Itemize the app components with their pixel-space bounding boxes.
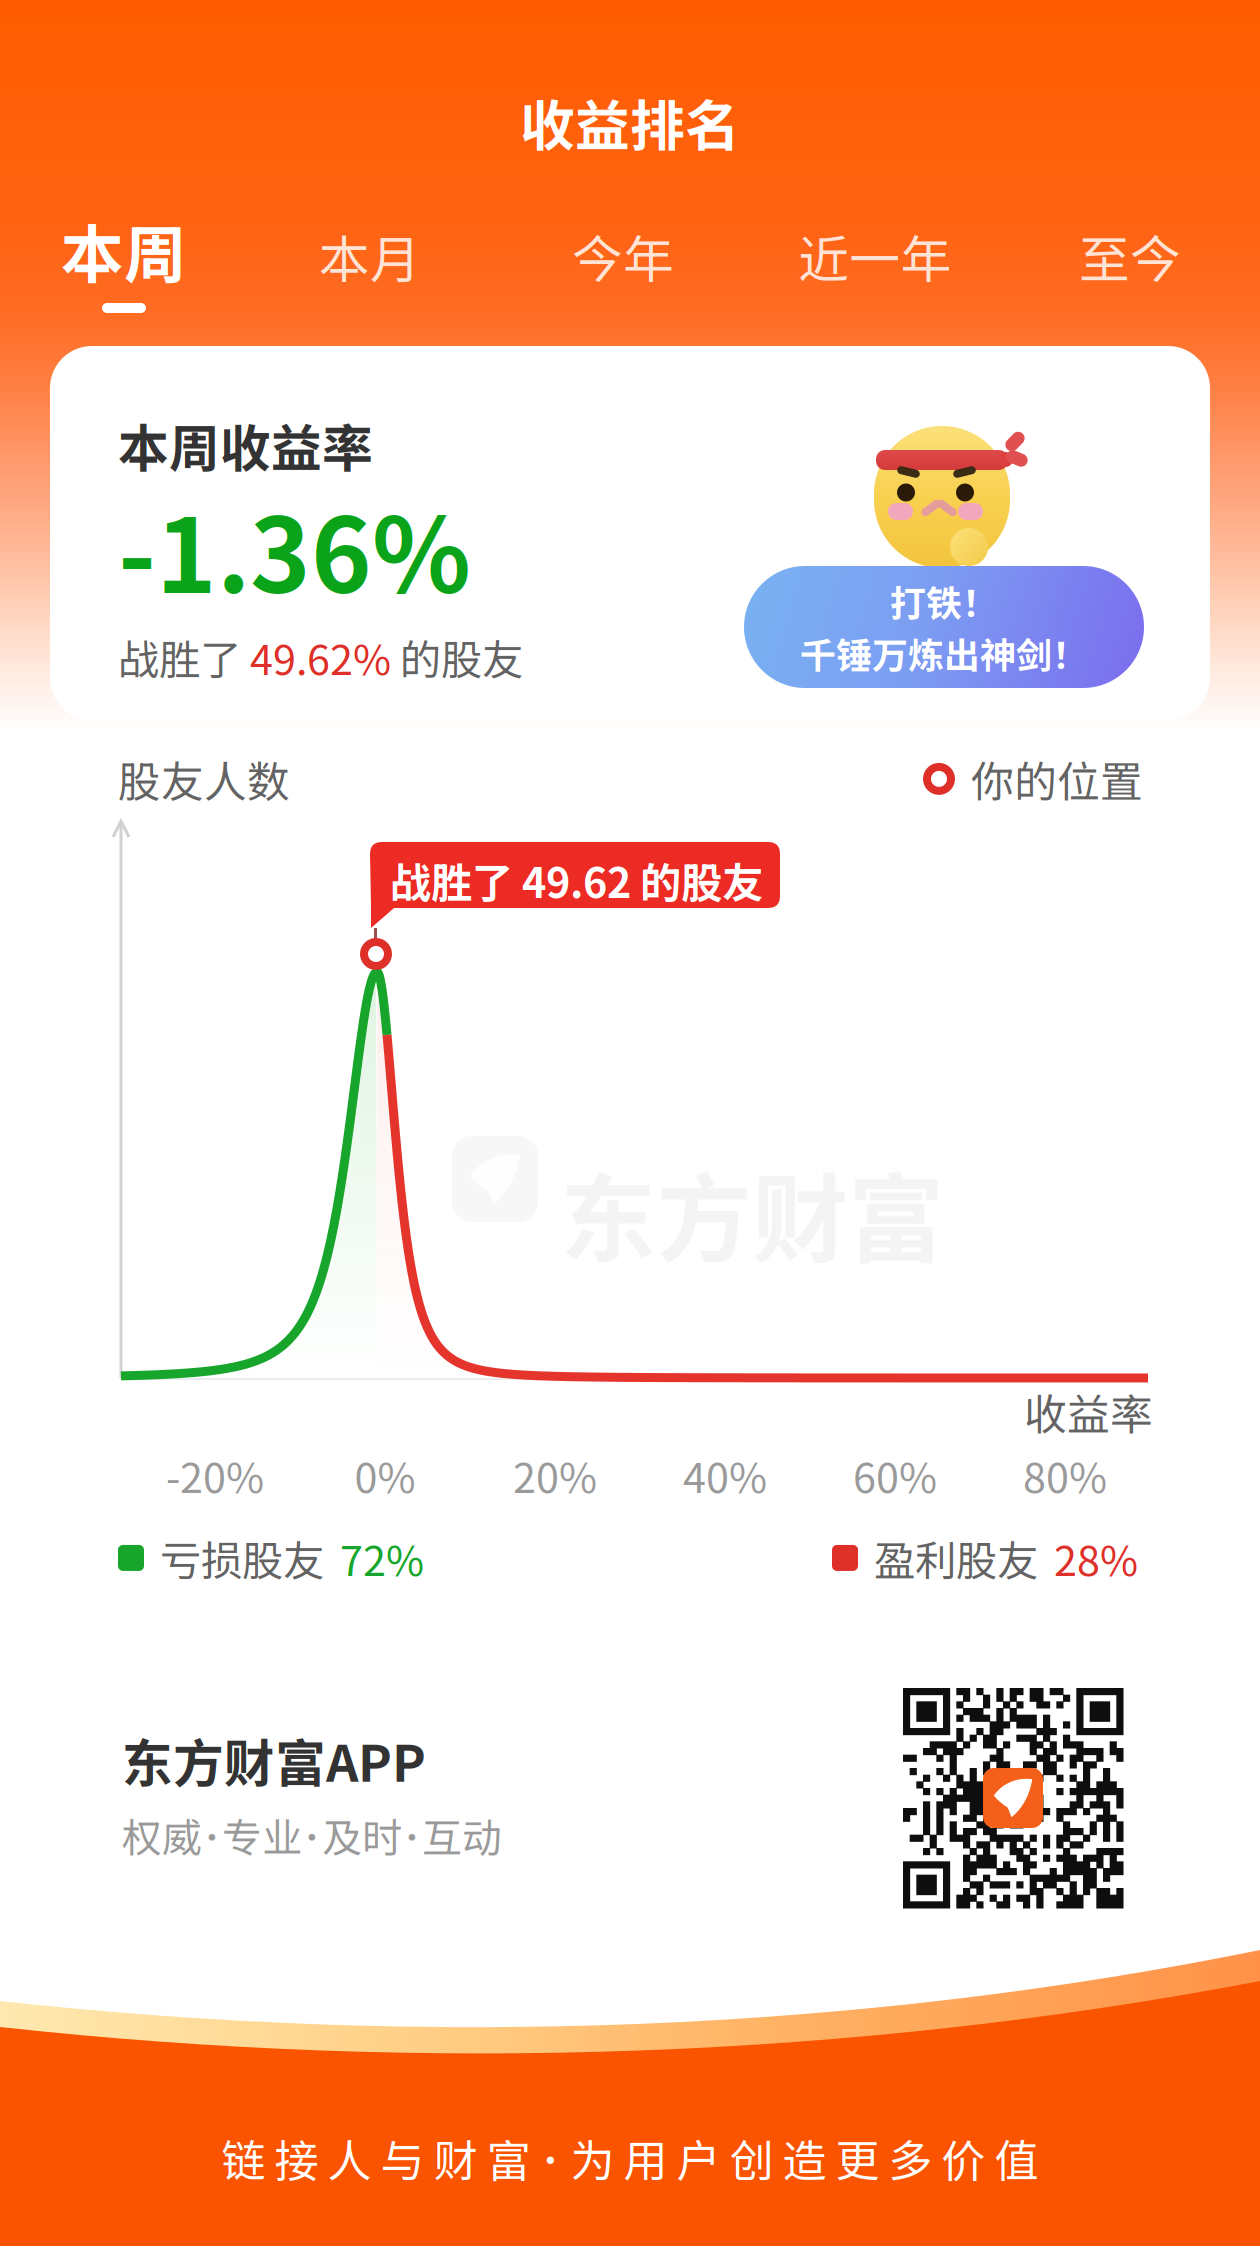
staticText: 战胜了 49.62 的股友 bbox=[390, 850, 763, 910]
staticText: 80% bbox=[1023, 1445, 1107, 1505]
button[interactable]: 本月 bbox=[290, 218, 450, 294]
button[interactable]: 本周 bbox=[44, 212, 204, 324]
staticText: 东方财富APP bbox=[122, 1723, 426, 1796]
staticText: 本月 bbox=[319, 219, 421, 293]
staticText: 72% bbox=[340, 1528, 424, 1588]
staticText: 今年 bbox=[572, 219, 674, 293]
button[interactable]: 今年 bbox=[543, 218, 703, 294]
staticText: 40% bbox=[683, 1445, 767, 1505]
staticText: 盈利股友 bbox=[874, 1528, 1038, 1588]
staticText: 至今 bbox=[1079, 219, 1181, 293]
staticText: 打铁！ bbox=[890, 575, 998, 627]
staticText: 28% bbox=[1054, 1528, 1138, 1588]
staticText: 0% bbox=[354, 1445, 415, 1505]
staticText: 本周 bbox=[61, 205, 187, 295]
staticText: -20% bbox=[166, 1445, 264, 1505]
staticText: 收益率 bbox=[1024, 1381, 1153, 1443]
staticText: 20% bbox=[513, 1445, 597, 1505]
staticText: 本周收益率 bbox=[118, 408, 373, 481]
staticText: 你的位置 bbox=[971, 748, 1143, 810]
staticText: 亏损股友 bbox=[160, 1528, 324, 1588]
staticText: 60% bbox=[853, 1445, 937, 1505]
staticText: 收益排名 bbox=[520, 82, 740, 162]
button[interactable]: 近一年 bbox=[775, 218, 975, 294]
staticText: 链 接 人 与 财 富 ･ 为 用 户 创 造 更 多 价 值 bbox=[221, 2126, 1038, 2190]
staticText: 49.62% bbox=[250, 627, 391, 687]
staticText: 权威･专业･及时･互动 bbox=[122, 1806, 502, 1864]
staticText: 的股友 bbox=[391, 627, 523, 687]
staticText: 东方财富 bbox=[560, 1143, 944, 1282]
staticText: 战胜了 bbox=[118, 627, 250, 687]
staticText: 千锤万炼出神剑！ bbox=[800, 627, 1088, 679]
staticText: -1.36% bbox=[118, 474, 471, 623]
button[interactable]: 扫码下载东方财富APP bbox=[903, 1688, 1123, 1908]
staticText: 股友人数 bbox=[118, 748, 290, 810]
button[interactable]: 至今 bbox=[1050, 218, 1210, 294]
staticText: 近一年 bbox=[798, 219, 951, 293]
